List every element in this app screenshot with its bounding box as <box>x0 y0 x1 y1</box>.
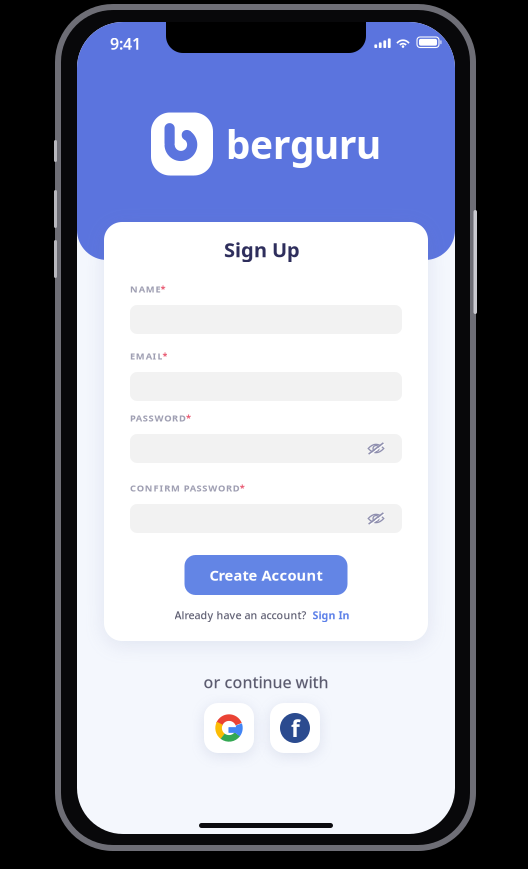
staticText: CONFIRM PASSWORD <box>130 482 240 494</box>
button[interactable]: Continue with Facebook <box>270 703 320 753</box>
staticText: * <box>162 350 167 362</box>
staticText: 9:41 <box>110 33 141 54</box>
staticText: Sign In <box>312 608 349 622</box>
button[interactable]: Continue with Google <box>204 703 254 753</box>
button[interactable] <box>130 434 402 463</box>
staticText: * <box>186 412 191 424</box>
staticText: Create Account <box>209 565 322 585</box>
staticText: berguru <box>226 118 381 170</box>
button[interactable]: Sign In <box>312 608 349 622</box>
button[interactable]: Create Account <box>184 555 347 595</box>
staticText: f <box>291 713 300 743</box>
staticText: or continue with <box>203 671 328 693</box>
staticText: EMAIL <box>130 350 162 362</box>
staticText: * <box>160 283 165 295</box>
staticText: Sign Up <box>224 236 300 263</box>
staticText: PASSWORD <box>130 412 186 424</box>
staticText: * <box>240 482 245 494</box>
staticText: NAME <box>130 283 160 295</box>
button[interactable] <box>130 504 402 533</box>
staticText: Already have an account? <box>174 608 306 622</box>
